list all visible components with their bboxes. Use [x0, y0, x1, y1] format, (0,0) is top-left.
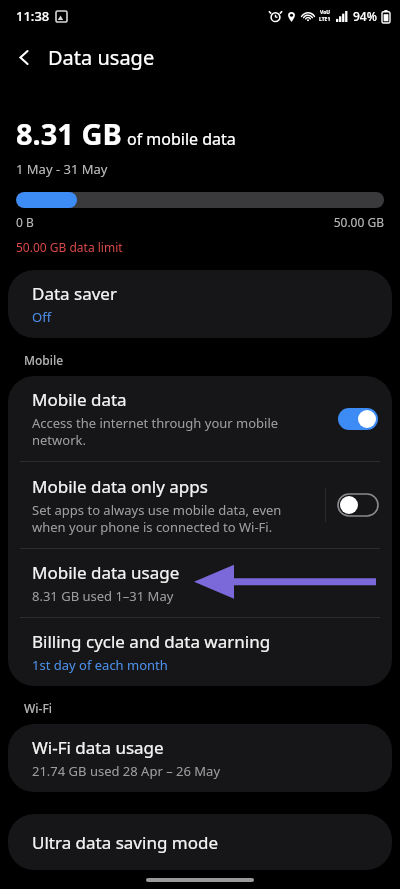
staticText: 1 May - 31 May — [16, 160, 108, 178]
staticText: Off — [32, 308, 52, 326]
staticText: 50.00 GB data limit — [16, 239, 123, 255]
staticText: 21.74 GB used 28 Apr – 26 May — [32, 762, 221, 780]
button[interactable]: Data saver — [8, 270, 392, 338]
staticText: 94% — [353, 8, 377, 24]
button[interactable]: Mobile data only apps — [8, 462, 392, 548]
staticText: Ultra data saving mode — [32, 831, 218, 854]
staticText: Mobile data usage — [32, 561, 180, 584]
staticText: 1st day of each month — [32, 656, 168, 674]
staticText: Mobile data — [32, 388, 127, 411]
staticText: of mobile data — [127, 128, 236, 150]
staticText: 11:38 — [16, 7, 50, 25]
staticText: Set apps to always use mobile data, even… — [32, 501, 282, 536]
button[interactable]: Mobile data — [8, 376, 392, 461]
staticText: 50.00 GB — [333, 214, 384, 230]
staticText: Billing cycle and data warning — [32, 630, 271, 653]
staticText: Wi-Fi — [24, 700, 52, 716]
staticText: Wi-Fi data usage — [32, 736, 164, 759]
button[interactable]: Mobile data usage — [8, 549, 392, 617]
staticText: 8.31 GB used 1–31 May — [32, 587, 174, 605]
staticText: Data saver — [32, 282, 117, 305]
staticText: Mobile data only apps — [32, 475, 208, 498]
staticText: Data usage — [48, 44, 155, 71]
button[interactable]: Ultra data saving mode — [8, 814, 392, 870]
button[interactable]: Billing cycle and data warning — [8, 618, 392, 686]
staticText: VoU — [320, 9, 331, 16]
staticText: Mobile — [24, 352, 64, 368]
staticText: LTE1 — [319, 16, 331, 23]
button[interactable]: Wi-Fi data usage — [8, 724, 392, 792]
staticText: Access the internet through your mobile … — [32, 414, 279, 449]
staticText: 0 B — [16, 214, 34, 230]
button[interactable]: Back — [0, 33, 48, 81]
staticText: 8.31 GB — [16, 114, 122, 153]
